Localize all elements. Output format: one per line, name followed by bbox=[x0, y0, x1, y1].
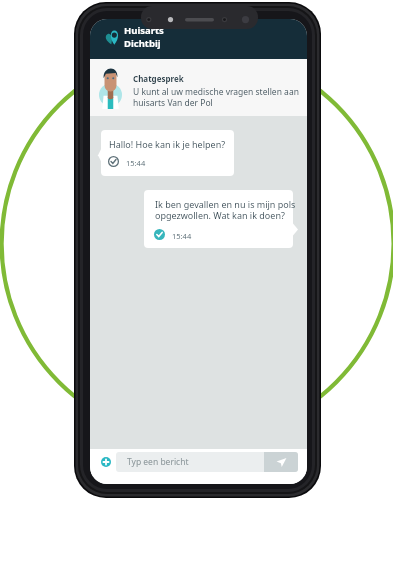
button[interactable]: Hallo! Hoe kan ik je helpen? bbox=[98, 130, 234, 176]
button[interactable]: Verstuur bbox=[264, 452, 298, 472]
button[interactable]: Typ een bericht bbox=[116, 452, 298, 472]
staticText: Huisarts bbox=[124, 24, 164, 37]
button[interactable]: Ik ben gevallen en nu is mijn pols opgez… bbox=[144, 190, 298, 248]
button[interactable]: Huisarts bbox=[90, 19, 307, 59]
staticText: Chatgesprek bbox=[133, 73, 184, 84]
staticText: Ik ben gevallen en nu is mijn pols opgez… bbox=[155, 198, 296, 222]
staticText: Hallo! Hoe kan ik je helpen? bbox=[109, 138, 226, 150]
staticText: 15:44 bbox=[172, 231, 192, 241]
button[interactable]: Chatgesprek bbox=[90, 59, 307, 116]
button[interactable]: Bijlage toevoegen bbox=[101, 457, 111, 467]
staticText: Typ een bericht bbox=[127, 456, 189, 468]
staticText: U kunt al uw medische vragen stellen aan… bbox=[133, 86, 299, 108]
staticText: 15:44 bbox=[126, 158, 146, 168]
staticText: Dichtbij bbox=[124, 37, 161, 50]
